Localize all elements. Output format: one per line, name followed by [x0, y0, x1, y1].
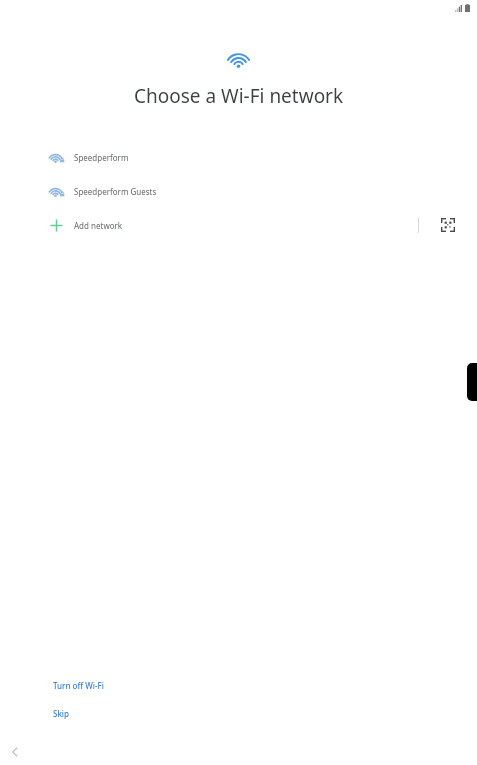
- staticText: Turn off Wi-Fi: [53, 680, 104, 691]
- button[interactable]: Add network: [0, 208, 418, 242]
- staticText: Choose a Wi-Fi network: [0, 83, 477, 109]
- button[interactable]: Skip: [45, 703, 77, 724]
- staticText: Speedperform: [74, 152, 129, 163]
- button[interactable]: Scan QR code: [419, 208, 477, 242]
- staticText: Speedperform Guests: [74, 186, 157, 197]
- button[interactable]: Back: [4, 741, 26, 763]
- button[interactable]: Speedperform Guests: [0, 174, 477, 208]
- staticText: Add network: [74, 220, 123, 231]
- button[interactable]: Turn off Wi-Fi: [45, 675, 112, 696]
- staticText: Skip: [53, 708, 69, 719]
- button[interactable]: Speedperform: [0, 140, 477, 174]
